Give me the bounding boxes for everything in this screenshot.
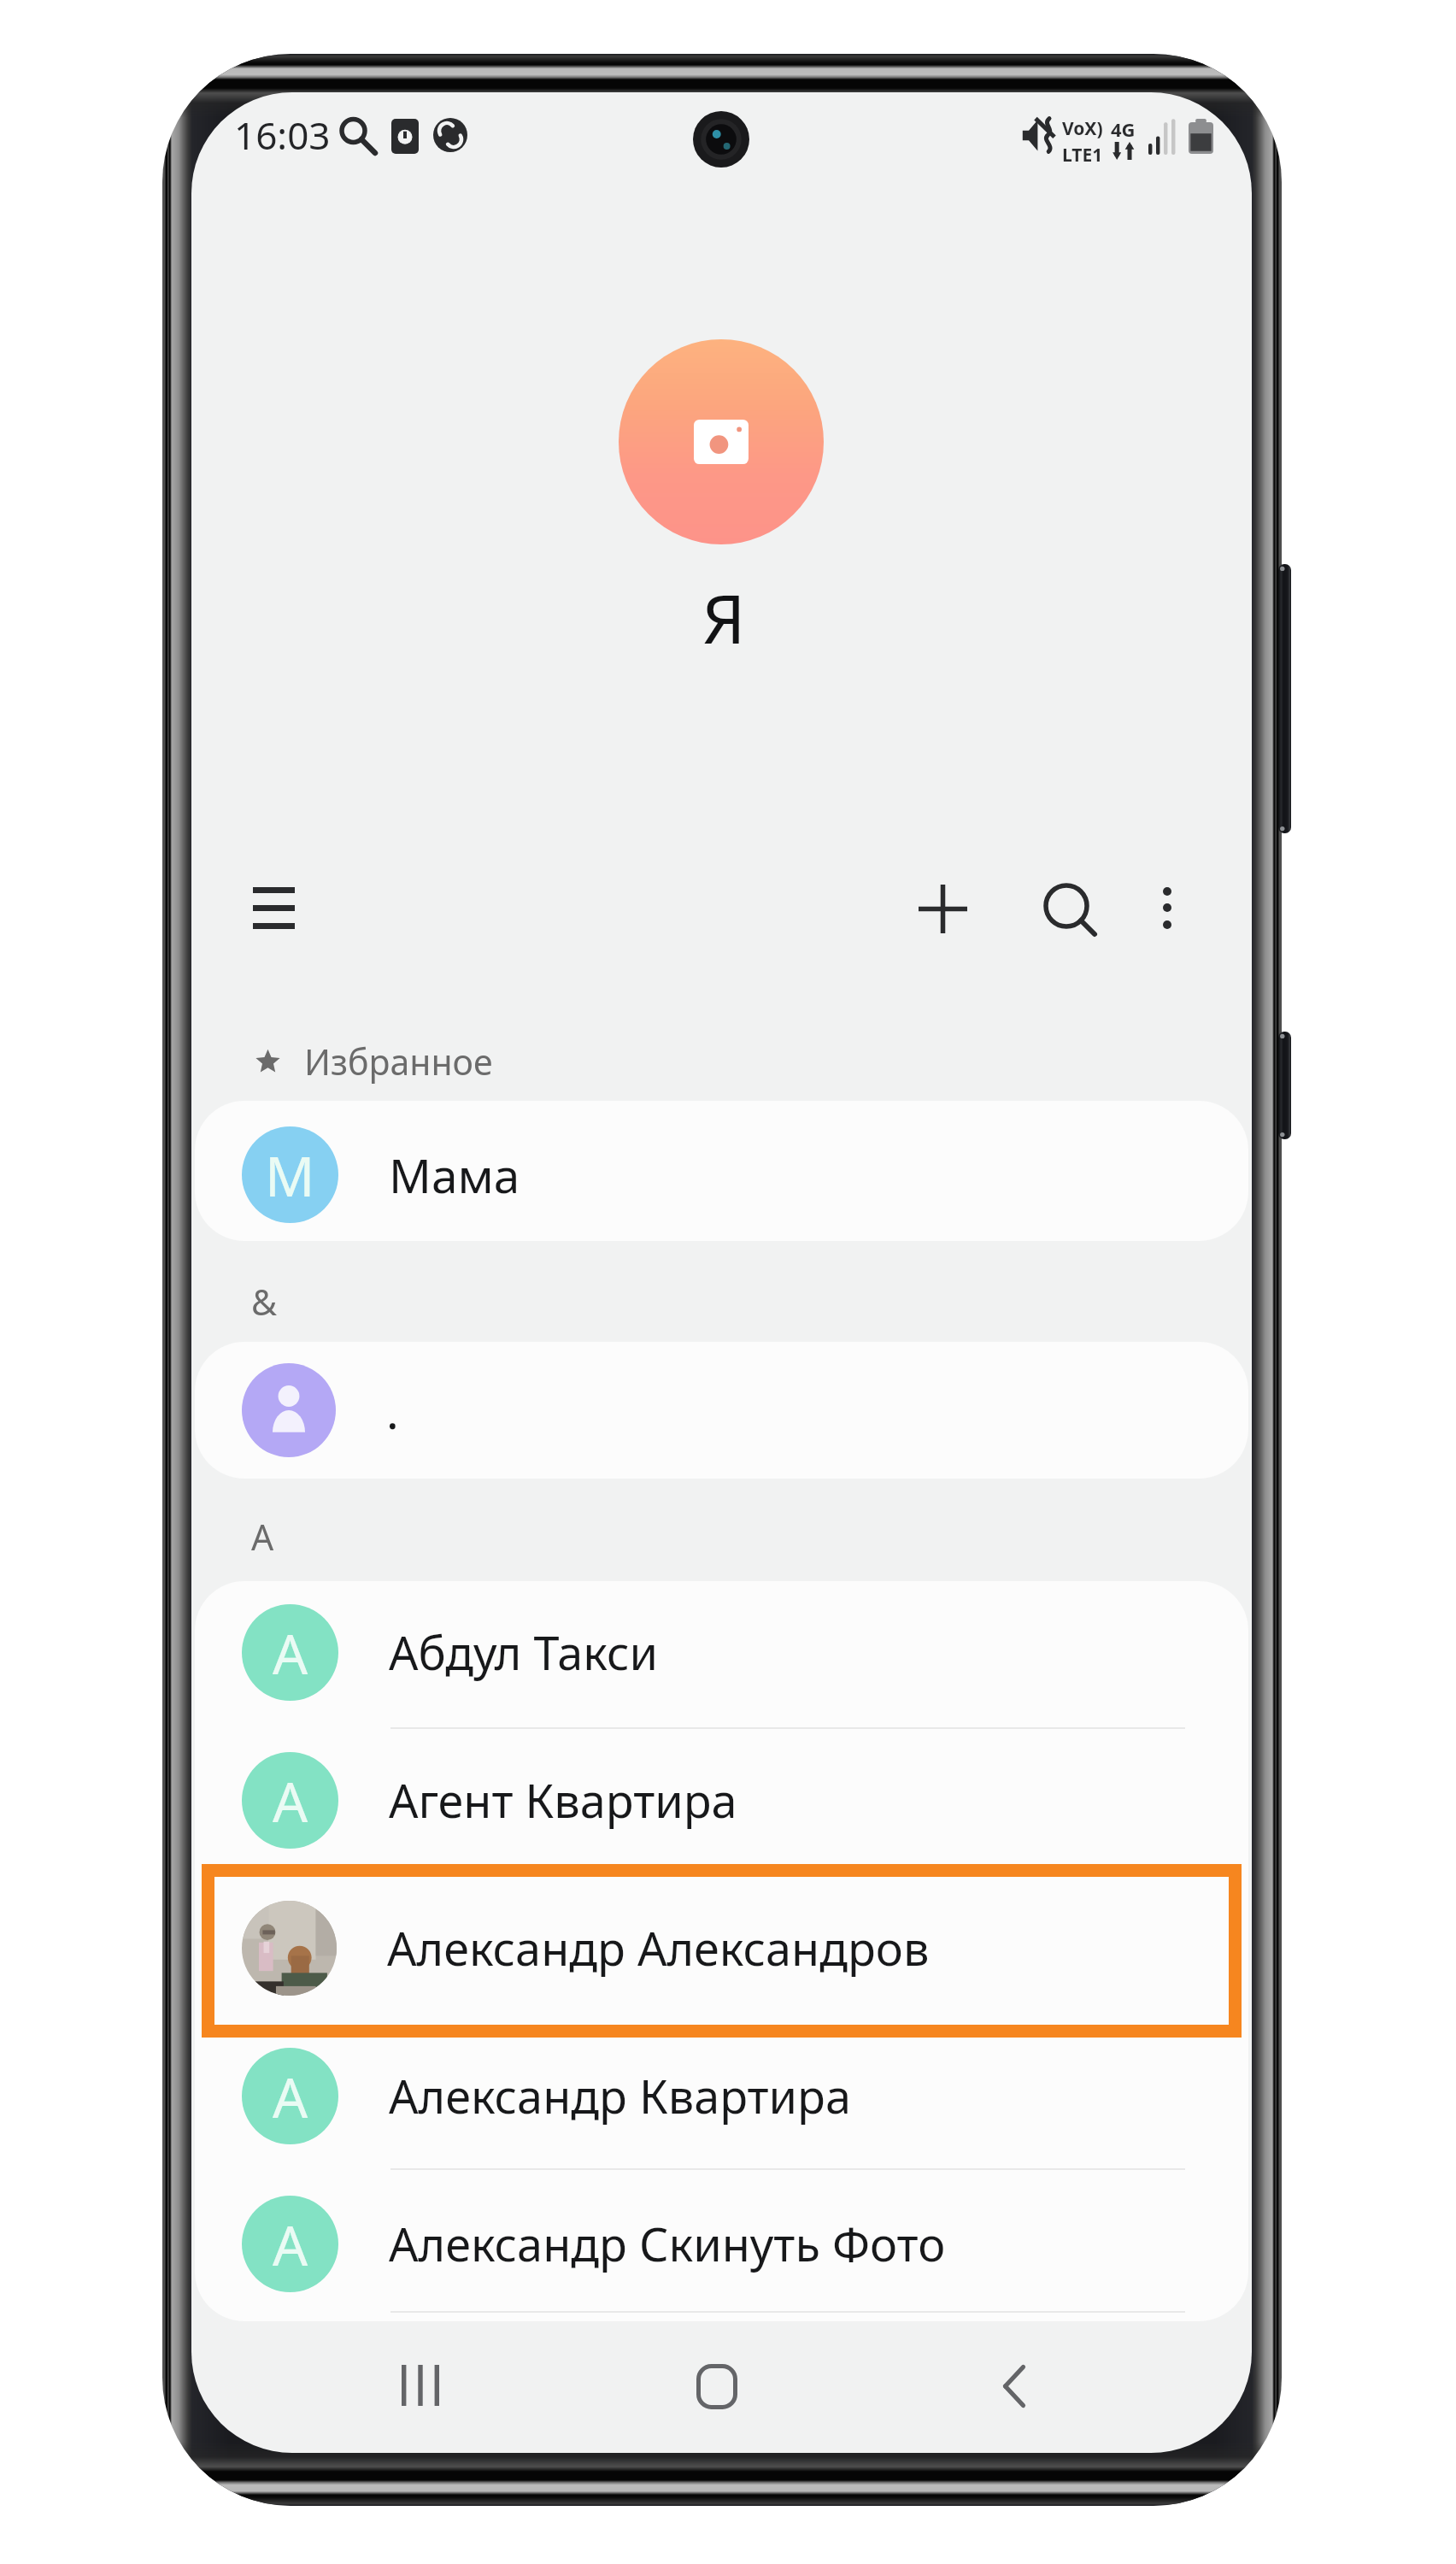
staticText: Абдул Такси [389, 1620, 659, 1684]
staticText: Александр Квартира [389, 2064, 851, 2127]
button[interactable]: Search [1032, 872, 1109, 949]
button[interactable]: Add contact [904, 870, 981, 947]
button[interactable]: More options [1133, 873, 1201, 942]
staticText: Агент Квартира [389, 1768, 737, 1832]
button[interactable]: Profile picture [619, 339, 824, 544]
button[interactable]: Home [666, 2335, 768, 2438]
staticText: Мама [389, 1143, 520, 1207]
button[interactable]: . [195, 1337, 1248, 1484]
button[interactable]: Menu [237, 871, 310, 944]
button[interactable]: Back [963, 2335, 1066, 2438]
button[interactable]: A [195, 2022, 1248, 2169]
staticText: VoX) [1062, 116, 1103, 141]
staticText: Я [702, 572, 746, 664]
staticText: Избранное [304, 1038, 493, 1085]
button[interactable]: A [195, 1579, 1248, 1726]
button[interactable]: Александр Александров [195, 1874, 1248, 2021]
staticText: A [273, 2207, 308, 2282]
staticText: M [265, 1138, 315, 1213]
button[interactable]: A [195, 2170, 1248, 2317]
staticText: . [386, 1379, 399, 1443]
staticText: & [251, 1278, 278, 1326]
staticText: 16:03 [234, 109, 331, 161]
staticText: Александр Скинуть Фото [389, 2212, 946, 2275]
staticText: A [273, 2059, 308, 2134]
button[interactable]: Recent apps [369, 2334, 472, 2437]
button[interactable]: M [195, 1101, 1248, 1248]
staticText: 4G [1111, 116, 1136, 142]
staticText: A [251, 1513, 274, 1561]
staticText: LTE1 [1062, 143, 1103, 168]
staticText: A [273, 1615, 308, 1691]
button[interactable]: A [195, 1726, 1248, 1873]
staticText: Александр Александров [387, 1916, 930, 1979]
staticText: A [273, 1763, 308, 1838]
